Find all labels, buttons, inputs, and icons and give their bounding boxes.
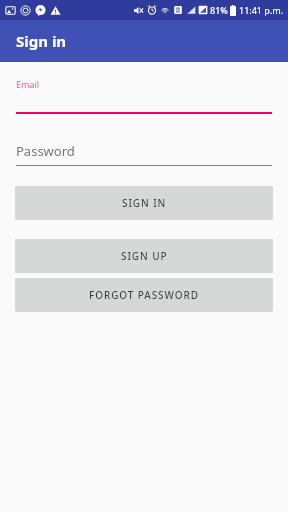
staticText: SIGN IN	[122, 196, 167, 210]
button[interactable]: SIGN IN	[15, 186, 273, 220]
staticText: Email	[16, 78, 40, 90]
button[interactable]: Email	[16, 78, 272, 114]
staticText: 81%	[210, 4, 228, 16]
staticText: 11:41 p.m.	[239, 4, 284, 16]
staticText: Password	[16, 142, 75, 160]
button[interactable]: Password	[16, 142, 272, 166]
button[interactable]: SIGN UP	[15, 239, 273, 273]
button[interactable]: FORGOT PASSWORD	[15, 278, 273, 312]
staticText: SIGN UP	[121, 249, 168, 263]
staticText: Sign in	[16, 31, 67, 51]
staticText: FORGOT PASSWORD	[89, 288, 199, 302]
